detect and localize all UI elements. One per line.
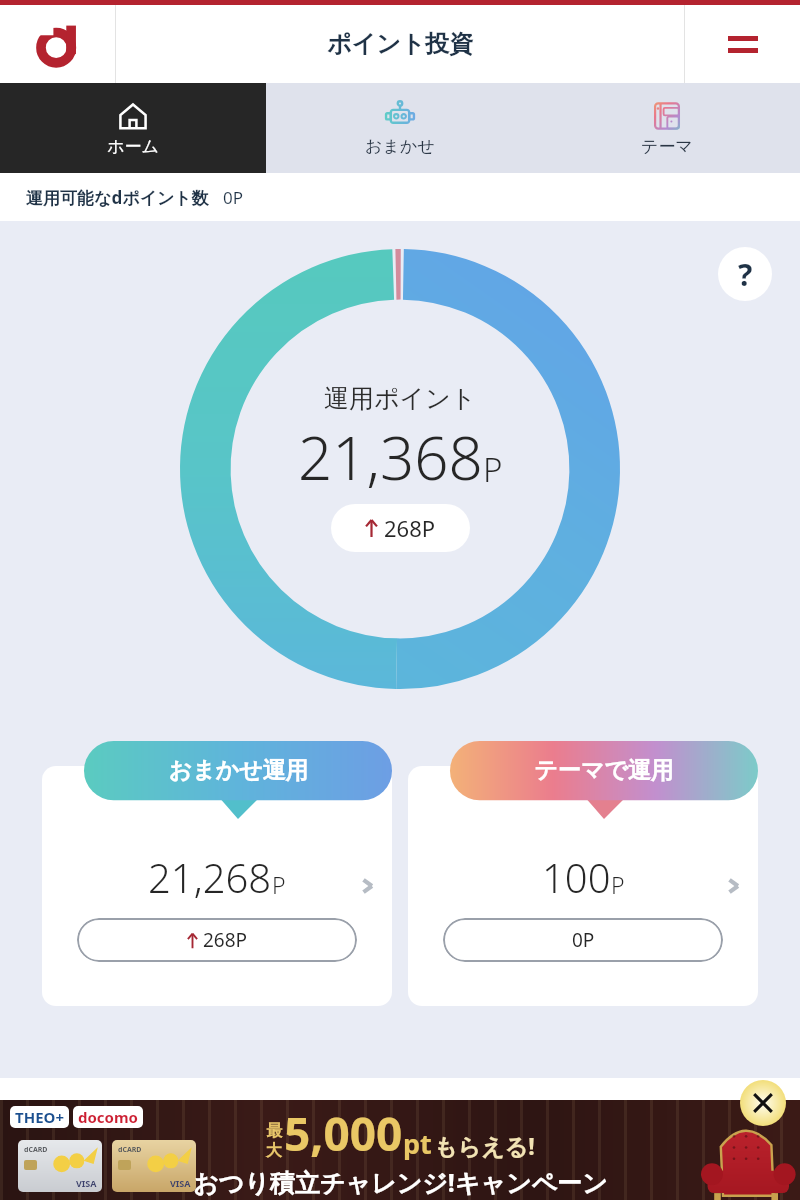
button[interactable]: 268P	[331, 504, 470, 552]
button[interactable]: Menu	[685, 5, 800, 83]
staticText: pt	[403, 1125, 432, 1162]
button[interactable]: 21,268	[42, 766, 392, 1006]
staticText: 運用ポイント	[324, 383, 477, 414]
button[interactable]: おまかせ	[266, 83, 533, 173]
staticText: ?	[738, 254, 753, 295]
staticText: テーマ	[641, 136, 693, 157]
staticText: テーマで運用	[534, 756, 674, 785]
staticText: 0P	[223, 186, 244, 209]
staticText: 21,368	[298, 416, 483, 498]
staticText: 268P	[203, 927, 248, 953]
staticText: P	[483, 447, 503, 492]
staticText: ポイント投資	[327, 29, 474, 59]
staticText: dCARD	[118, 1145, 142, 1155]
staticText: P	[272, 869, 286, 900]
staticText: おまかせ運用	[168, 756, 309, 785]
staticText: 最	[266, 1121, 282, 1141]
staticText: 大	[266, 1141, 282, 1161]
staticText: 5,000	[284, 1102, 403, 1165]
staticText: 運用可能なdポイント数	[26, 186, 209, 209]
staticText: 268P	[384, 513, 436, 543]
button[interactable]: docomo home	[0, 5, 115, 83]
staticText: 0P	[572, 927, 595, 953]
staticText: VISA	[76, 1177, 97, 1189]
staticText: もらえる!	[434, 1130, 535, 1161]
staticText: 100	[542, 850, 611, 904]
button[interactable]: Close ad	[740, 1080, 786, 1126]
staticText: THEO+	[15, 1107, 64, 1127]
staticText: VISA	[170, 1177, 191, 1189]
button[interactable]: Help	[718, 247, 772, 301]
staticText: おまかせ	[365, 136, 435, 157]
staticText: 21,268	[148, 850, 272, 904]
staticText: P	[611, 869, 625, 900]
button[interactable]: ホーム	[0, 83, 266, 173]
button[interactable]: 100	[408, 766, 758, 1006]
staticText: docomo	[78, 1107, 138, 1127]
staticText: ホーム	[107, 136, 159, 157]
staticText: dCARD	[24, 1145, 48, 1155]
button[interactable]: THEO+	[0, 1100, 800, 1200]
staticText: おつり積立チャレンジ!キャンペーン	[193, 1165, 608, 1199]
button[interactable]: テーマ	[533, 83, 800, 173]
